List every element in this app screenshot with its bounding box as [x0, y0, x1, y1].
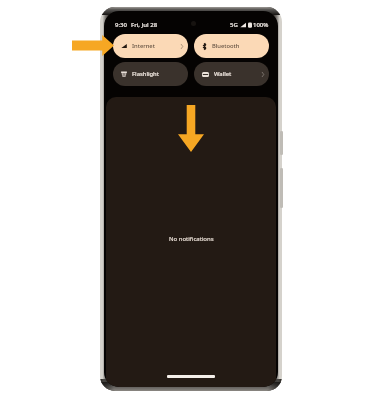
staticText: Bluetooth — [212, 42, 240, 50]
staticText: Flashlight — [132, 70, 159, 78]
staticText: Wallet — [214, 70, 232, 78]
other: Power button — [280, 131, 283, 155]
staticText: Fri, Jul 28 — [131, 21, 158, 29]
button[interactable]: Bluetooth — [194, 34, 269, 58]
staticText: 5G — [230, 21, 238, 29]
staticText: 100% — [253, 21, 269, 29]
other: Volume button — [280, 168, 283, 208]
button[interactable]: Internet — [113, 34, 188, 58]
staticText: Internet — [132, 42, 155, 50]
button[interactable]: Flashlight — [113, 62, 188, 86]
staticText: 9:30 — [115, 21, 127, 29]
button[interactable]: Wallet — [194, 62, 269, 86]
staticText: No notifications — [169, 235, 214, 243]
other: Arrow pointing to the Internet tile — [72, 35, 114, 56]
other: Swipe down arrow — [178, 105, 204, 152]
